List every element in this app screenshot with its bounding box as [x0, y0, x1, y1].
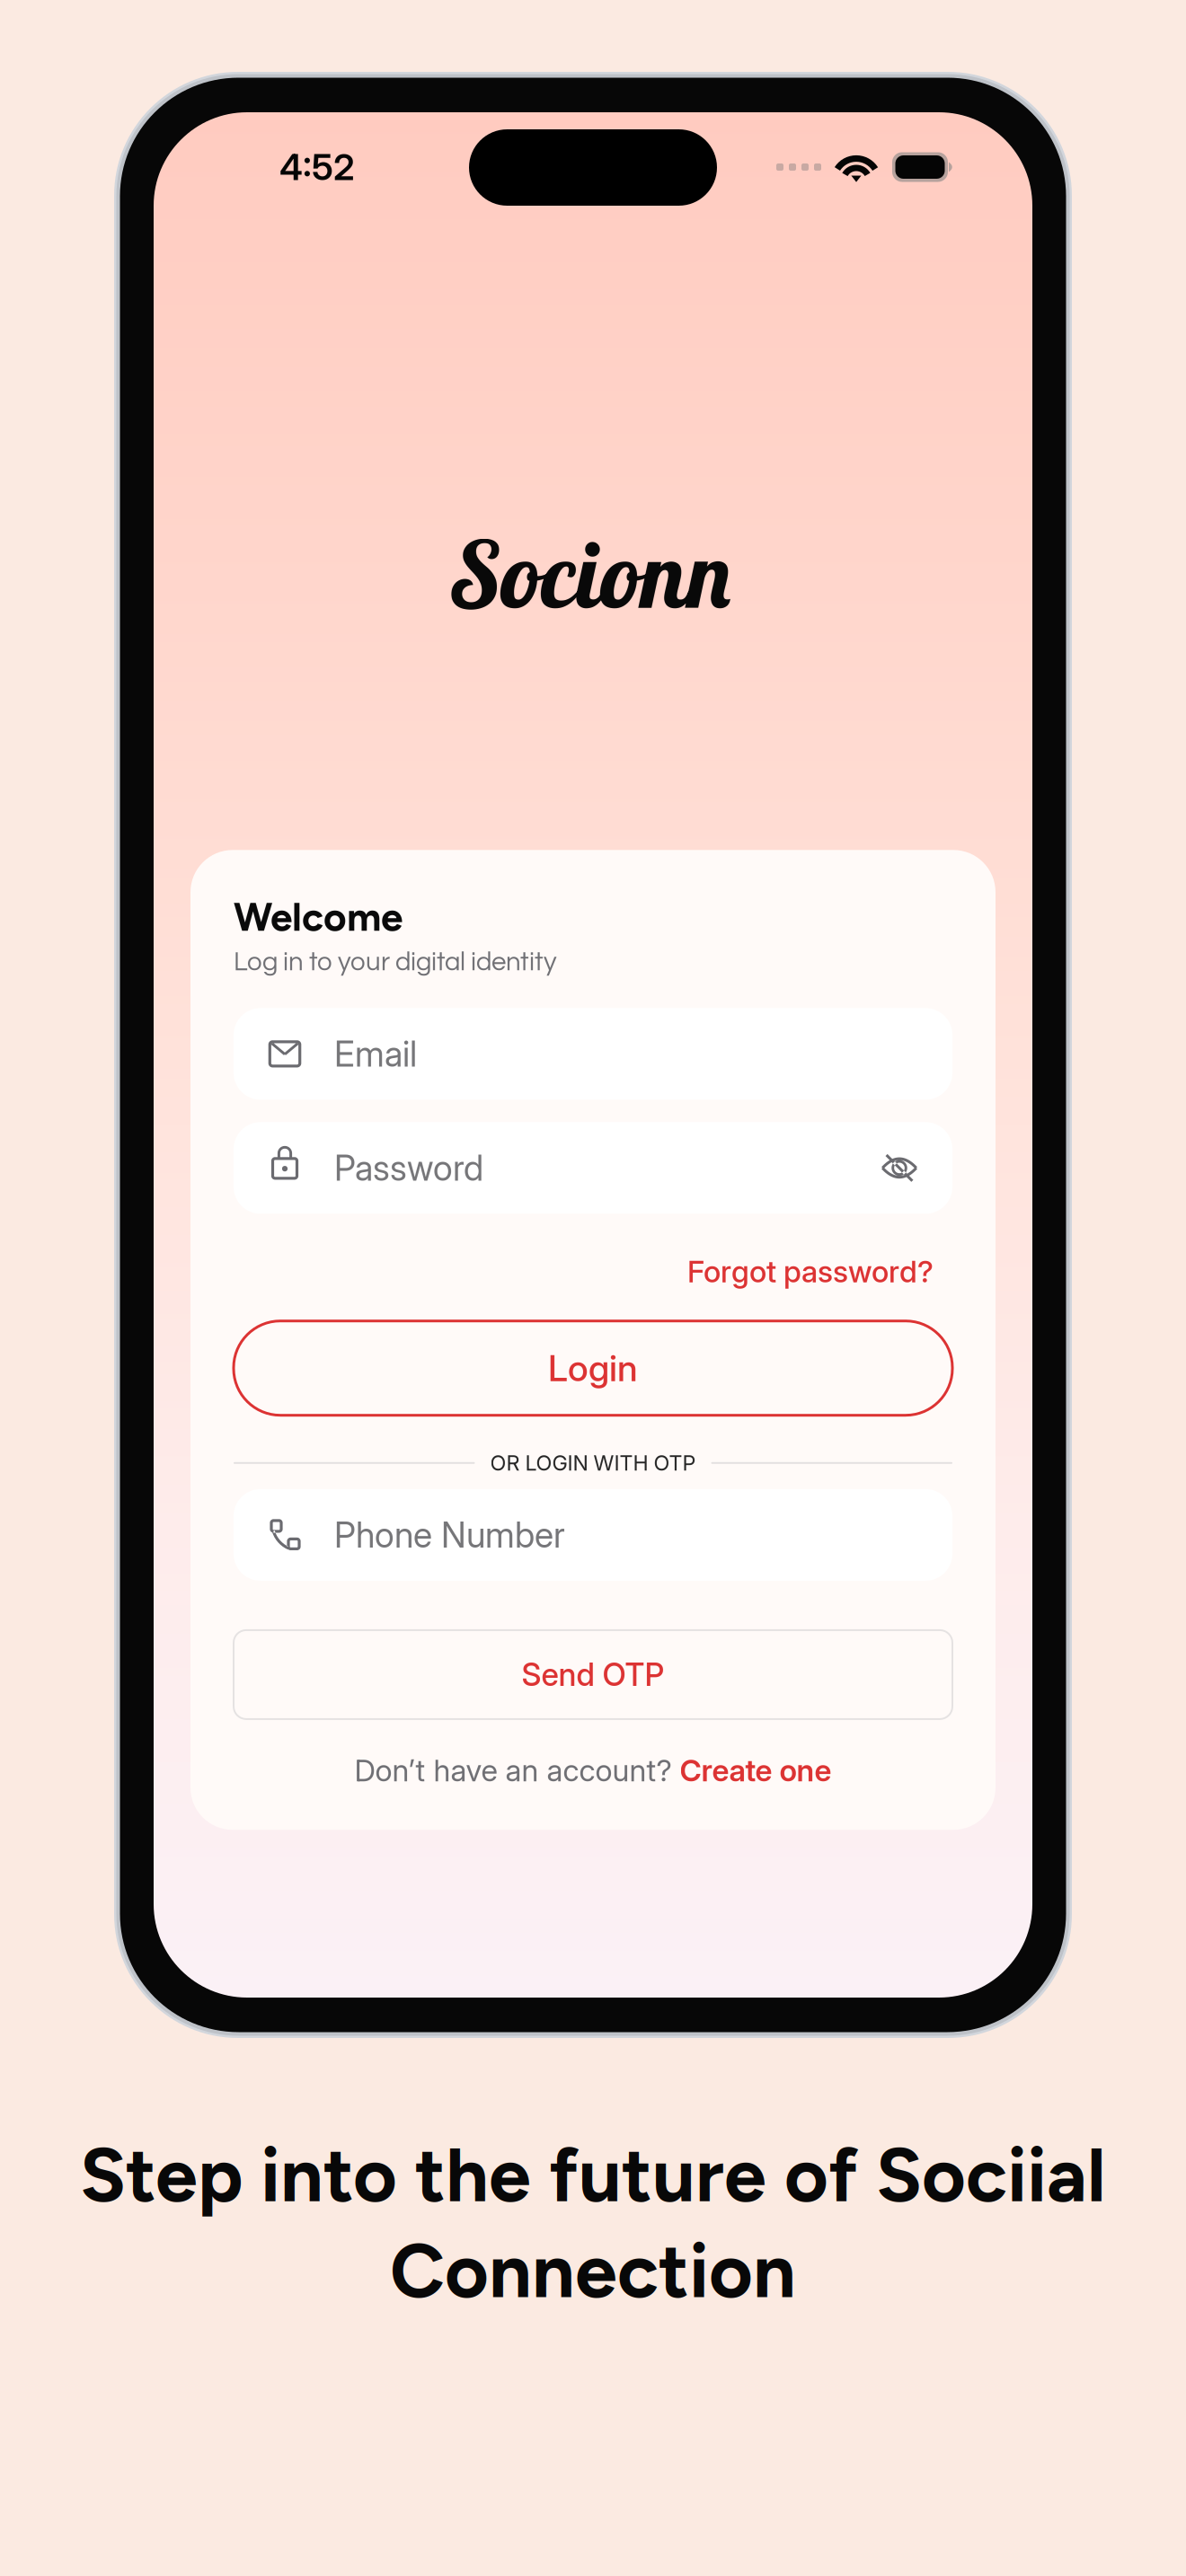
staticText: Create one [680, 1752, 832, 1788]
staticText: Password [334, 1147, 483, 1189]
staticText: Phone Number [334, 1514, 565, 1556]
staticText: Login [548, 1346, 638, 1390]
staticText: Forgot password? [687, 1253, 934, 1289]
staticText: Welcome [234, 893, 403, 940]
staticText: Email [334, 1033, 417, 1075]
staticText: Send OTP [522, 1656, 664, 1693]
button[interactable]: Don’t have an account? [234, 1752, 952, 1788]
button[interactable]: Send OTP [234, 1630, 952, 1719]
staticText: 4:52 [279, 145, 355, 189]
staticText: Don’t have an account? [354, 1752, 680, 1788]
staticText: Socionn [451, 516, 735, 631]
staticText: Connection [390, 2226, 796, 2316]
staticText: Log in to your digital identity [234, 949, 557, 976]
button[interactable]: Login [234, 1321, 952, 1415]
button[interactable]: Forgot password? [687, 1253, 952, 1289]
staticText: Step into the future of Sociial [80, 2130, 1106, 2220]
staticText: OR LOGIN WITH OTP [490, 1450, 696, 1476]
